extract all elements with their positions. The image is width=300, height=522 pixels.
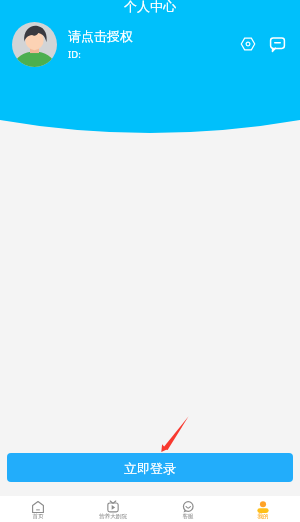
staticText: 首页: [32, 513, 44, 520]
staticText: 营养大剧院: [99, 513, 127, 520]
button[interactable]: 营养大剧院: [75, 498, 150, 520]
staticText: ID:: [68, 48, 81, 61]
button[interactable]: 立即登录: [7, 453, 293, 482]
button[interactable]: 我的: [225, 498, 300, 520]
button[interactable]: Messages: [267, 34, 288, 55]
staticText: 请点击授权: [68, 28, 133, 44]
staticText: 立即登录: [124, 460, 176, 476]
staticText: 客服: [182, 513, 194, 520]
staticText: 个人中心: [124, 0, 176, 14]
staticText: 我的: [257, 513, 269, 520]
button[interactable]: Settings: [237, 33, 258, 54]
button[interactable]: 客服: [150, 498, 225, 520]
button[interactable]: 首页: [0, 498, 75, 520]
